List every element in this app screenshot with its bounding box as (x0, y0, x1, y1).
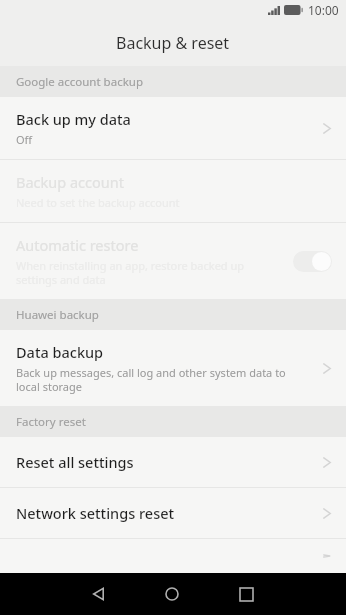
button[interactable]: Back (62, 573, 135, 615)
staticText: Automatic restore (16, 235, 139, 255)
staticText: 10:00 (308, 2, 339, 18)
staticText: Network settings reset (16, 503, 175, 523)
staticText: Off (16, 132, 33, 147)
staticText: Need to set the backup account (16, 195, 180, 210)
staticText: Factory reset (16, 414, 86, 430)
staticText: Backup & reset (116, 32, 230, 54)
button[interactable]: Home (135, 573, 209, 615)
button[interactable]: Data backup (0, 330, 346, 406)
button[interactable]: Automatic restore (0, 223, 346, 299)
staticText: Google account backup (16, 74, 143, 90)
staticText: When reinstalling an app, restore backed… (16, 258, 283, 287)
button[interactable]: Recent apps (209, 573, 283, 615)
button[interactable]: Automatic restore toggle (293, 251, 332, 272)
staticText: Huawei backup (16, 307, 99, 323)
button[interactable]: Network settings reset (0, 488, 346, 538)
staticText: Back up my data (16, 109, 131, 129)
staticText: Reset all settings (16, 452, 134, 472)
button[interactable]: Back up my data (0, 97, 346, 159)
staticText: Backup account (16, 172, 124, 192)
staticText: Back up messages, call log and other sys… (16, 365, 312, 394)
button[interactable]: Reset all settings (0, 437, 346, 487)
staticText: Data backup (16, 342, 104, 362)
